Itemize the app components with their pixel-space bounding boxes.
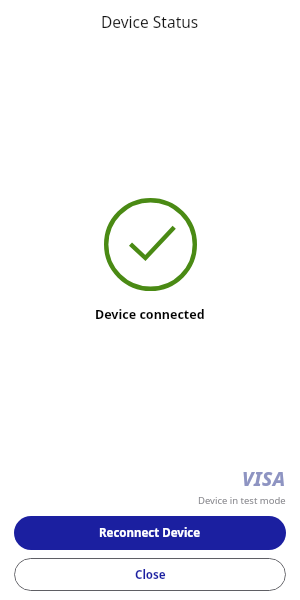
staticText: Device Status (101, 11, 199, 32)
staticText: Device connected (95, 306, 205, 323)
button[interactable]: Reconnect Device (14, 516, 286, 550)
other: Device connected successfully (104, 198, 197, 291)
staticText: Close (135, 567, 166, 583)
staticText: VISA (242, 466, 286, 492)
staticText: Device in test mode (198, 494, 286, 507)
button[interactable]: Close (14, 558, 286, 591)
staticText: Reconnect Device (99, 525, 201, 541)
